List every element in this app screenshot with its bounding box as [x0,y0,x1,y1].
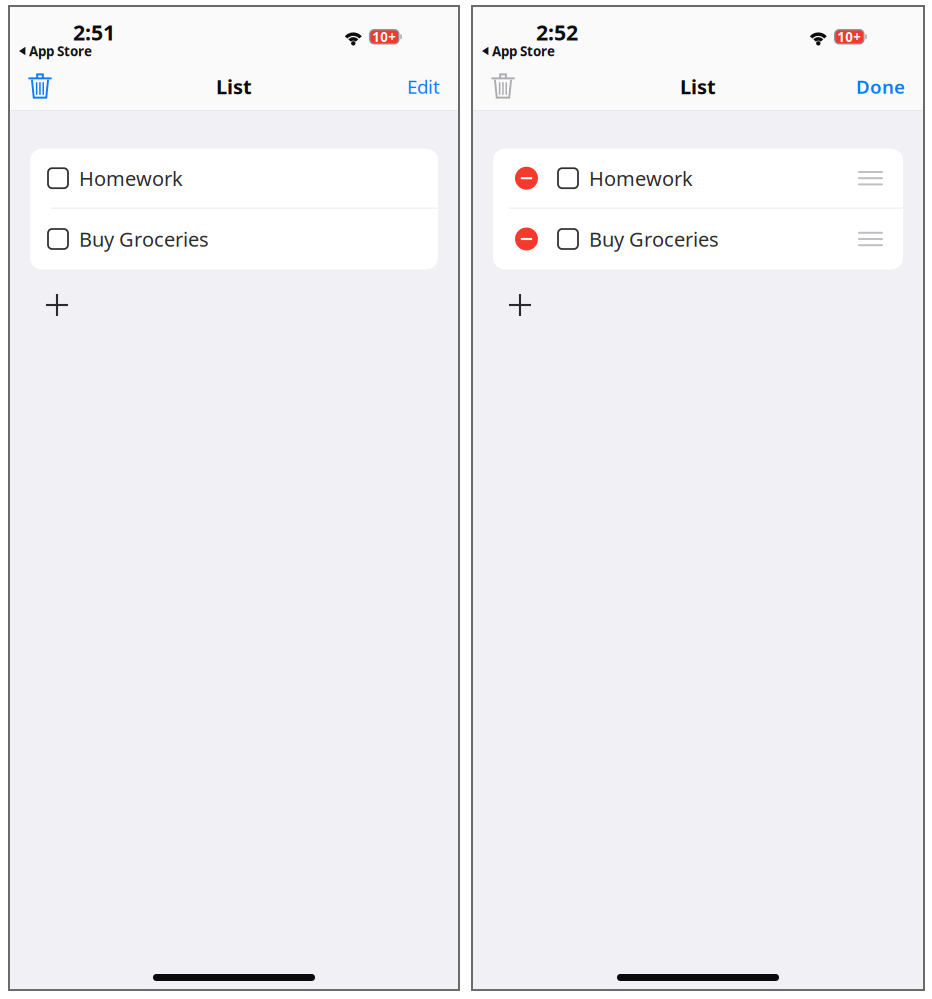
staticText: Buy Groceries [79,226,209,252]
staticText: Buy Groceries [589,226,719,252]
staticText: App Store [29,42,92,60]
button[interactable]: Add item [9,276,82,326]
staticText: List [680,73,716,100]
button[interactable]: Delete all [9,67,63,106]
button[interactable]: Delete all [472,67,526,106]
button[interactable]: Homework [30,149,438,208]
staticText: Done [856,74,905,99]
staticText: Homework [79,165,183,191]
staticText: App Store [492,42,555,60]
staticText: Edit [407,74,440,99]
staticText: List [216,73,252,100]
staticText: 10+ [372,28,396,46]
button[interactable]: Buy Groceries [30,208,438,269]
staticText: 2:52 [536,18,578,46]
staticText: 10+ [837,28,861,46]
button[interactable]: Edit [396,68,459,105]
button[interactable]: Add item [472,276,545,326]
staticText: Homework [589,165,693,191]
button[interactable]: Done [845,68,924,105]
staticText: 2:51 [73,18,115,46]
button[interactable]: Homework [493,149,903,208]
button[interactable]: Buy Groceries [493,208,903,269]
